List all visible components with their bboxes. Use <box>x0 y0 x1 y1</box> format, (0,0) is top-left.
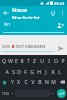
staticText: SMS <box>2 44 11 49</box>
button[interactable]: SMS <box>2 42 54 54</box>
button[interactable]: D <box>16 67 22 77</box>
button[interactable]: Shift <box>0 77 9 87</box>
staticText: X <box>17 79 20 86</box>
button[interactable]: V <box>29 77 36 87</box>
staticText: ?123 <box>2 92 9 96</box>
button[interactable]: Add contact <box>54 19 66 32</box>
staticText: A <box>5 69 9 76</box>
button[interactable]: M <box>50 77 57 87</box>
staticText: B <box>38 79 42 86</box>
staticText: Q <box>2 58 6 65</box>
button[interactable]: Y <box>9 77 15 87</box>
staticText: W <box>8 58 13 65</box>
button[interactable]: W <box>7 56 13 67</box>
staticText: Y <box>11 79 14 86</box>
button[interactable]: Period <box>50 88 55 99</box>
button[interactable]: Comma <box>10 88 15 99</box>
staticText: I <box>48 58 50 65</box>
button[interactable]: U <box>38 56 45 67</box>
button[interactable]: Enter <box>57 89 66 98</box>
staticText: C <box>24 79 28 86</box>
staticText: F <box>24 69 27 76</box>
button[interactable]: X <box>15 77 22 87</box>
button[interactable]: K <box>49 67 56 77</box>
staticText: V <box>31 79 35 86</box>
button[interactable]: S <box>10 67 16 77</box>
button[interactable]: G <box>28 67 35 77</box>
staticText: D <box>17 69 21 76</box>
staticText: P <box>61 58 65 65</box>
button[interactable]: C <box>22 77 29 87</box>
button[interactable]: P <box>59 56 66 67</box>
staticText: Z <box>33 58 36 65</box>
button[interactable]: T <box>25 56 31 67</box>
staticText: U <box>40 58 44 65</box>
button[interactable]: F <box>22 67 28 77</box>
staticText: E <box>15 58 18 65</box>
staticText: G <box>30 69 34 76</box>
staticText: Neue Nachricht <box>12 6 48 19</box>
staticText: T <box>27 58 30 65</box>
staticText: L <box>58 69 61 76</box>
button[interactable]: O <box>52 56 59 67</box>
button[interactable]: R <box>19 56 25 67</box>
button[interactable]: A <box>4 67 10 77</box>
staticText: J <box>45 69 47 76</box>
button[interactable]: H <box>35 67 42 77</box>
staticText: TEXT EINGEBEN <box>15 44 46 49</box>
button[interactable]: E <box>13 56 19 67</box>
staticText: O <box>54 58 58 65</box>
button[interactable]: Back <box>0 6 12 19</box>
button[interactable]: L <box>56 67 63 77</box>
button[interactable]: N <box>43 77 50 87</box>
staticText: H <box>37 69 41 76</box>
button[interactable]: Z <box>31 56 38 67</box>
button[interactable]: J <box>42 67 49 77</box>
button[interactable]: Backspace <box>57 77 67 87</box>
staticText: N <box>45 79 49 86</box>
staticText: S <box>12 69 15 76</box>
button[interactable]: Q <box>1 56 7 67</box>
staticText: 09:44 <box>54 1 65 6</box>
button[interactable]: Symbols <box>0 88 10 99</box>
button[interactable]: Send <box>54 42 66 54</box>
button[interactable]: B <box>36 77 43 87</box>
button[interactable]: More options <box>58 6 67 19</box>
staticText: An <box>4 21 54 27</box>
staticText: K <box>51 69 55 76</box>
button[interactable]: I <box>45 56 52 67</box>
button[interactable]: Attach file <box>48 6 58 19</box>
staticText: M <box>51 79 56 86</box>
staticText: R <box>20 58 24 65</box>
